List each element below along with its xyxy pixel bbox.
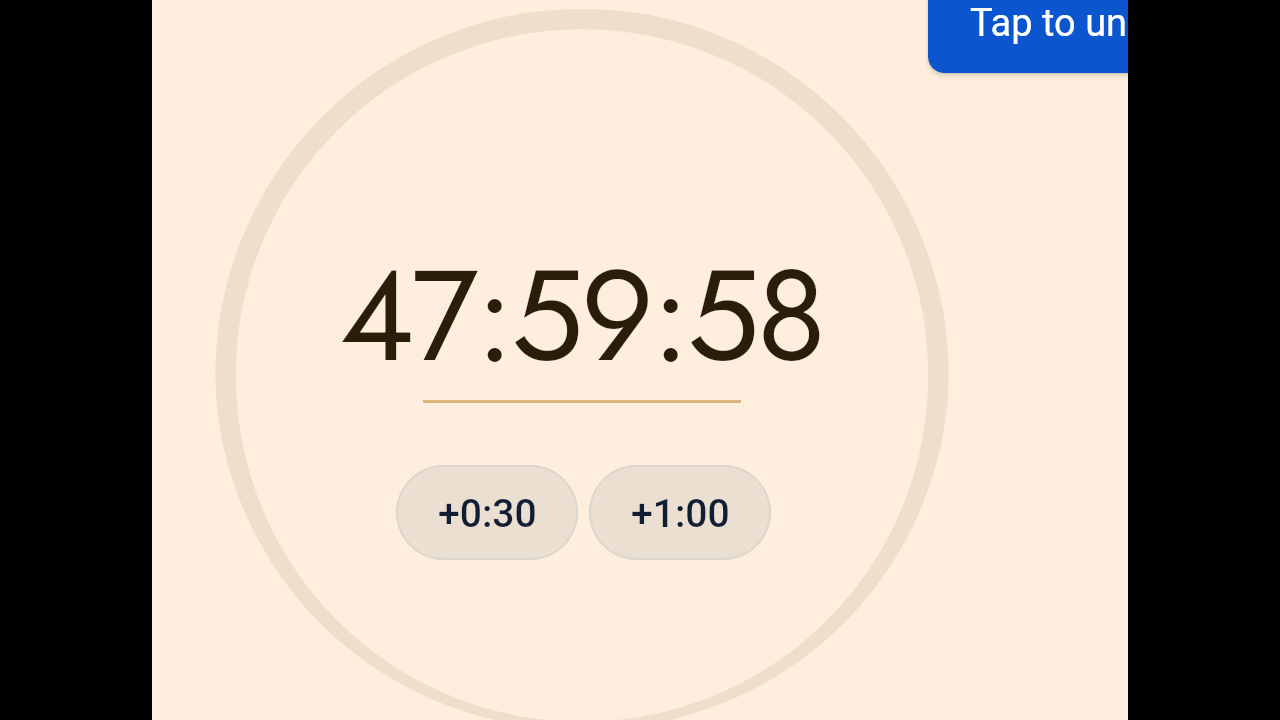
button[interactable]: Pause timer — [215, 9, 949, 720]
button[interactable]: +1:00 — [589, 465, 771, 560]
staticText: Tap to unlock — [970, 1, 1128, 46]
staticText: 47:59:58 — [339, 223, 824, 408]
staticText: +1:00 — [631, 491, 730, 537]
button[interactable]: Tap to unlock — [928, 0, 1128, 73]
button[interactable]: +0:30 — [396, 465, 578, 560]
staticText: +0:30 — [438, 491, 537, 537]
